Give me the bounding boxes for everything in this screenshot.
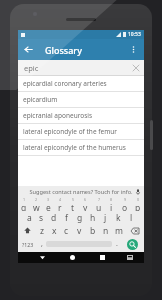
staticText: a xyxy=(27,212,32,224)
button[interactable]: Recent apps xyxy=(92,252,113,263)
button[interactable]: g xyxy=(73,211,86,224)
button[interactable]: epicranial aponeurosis xyxy=(18,108,144,123)
button[interactable]: . xyxy=(112,237,121,251)
staticText: n xyxy=(103,225,109,237)
staticText: c xyxy=(64,225,69,237)
button[interactable]: x xyxy=(48,224,60,237)
staticText: j xyxy=(104,212,107,224)
staticText: b xyxy=(90,225,96,237)
button[interactable]: l xyxy=(125,211,138,224)
staticText: 3 xyxy=(47,197,50,202)
button[interactable]: , xyxy=(37,237,46,251)
button[interactable]: 7 xyxy=(92,197,105,211)
staticText: 4 xyxy=(59,197,62,202)
button[interactable]: Home xyxy=(62,252,83,263)
staticText: Suggest contact names? Touch for info. xyxy=(29,188,133,196)
staticText: f xyxy=(65,212,68,224)
button[interactable]: Search xyxy=(127,239,138,250)
button[interactable]: h xyxy=(86,211,99,224)
button[interactable]: Shift xyxy=(18,224,36,237)
staticText: 6 xyxy=(84,197,87,202)
button[interactable]: 9 xyxy=(118,197,131,211)
staticText: s xyxy=(39,212,44,224)
button[interactable]: More options xyxy=(123,39,144,60)
staticText: epic xyxy=(24,63,39,73)
button[interactable]: Backspace xyxy=(125,224,144,237)
staticText: h xyxy=(90,212,96,224)
staticText: . xyxy=(116,239,118,249)
button[interactable]: epicardial coronary arteries xyxy=(18,76,144,91)
staticText: 5 xyxy=(72,197,75,202)
staticText: m xyxy=(115,225,123,237)
staticText: epicardial coronary arteries xyxy=(23,79,107,88)
button[interactable]: 6 xyxy=(79,197,92,211)
button[interactable]: f xyxy=(60,211,73,224)
staticText: r xyxy=(58,202,62,211)
button[interactable]: z xyxy=(36,224,48,237)
staticText: x xyxy=(52,225,57,237)
staticText: p xyxy=(135,202,141,211)
button[interactable]: epic xyxy=(18,60,144,76)
button[interactable]: Switch keyboard xyxy=(119,252,140,263)
staticText: epicranial aponeurosis xyxy=(23,111,93,120)
button[interactable]: lateral epicondyle of the humerus xyxy=(18,140,144,155)
button[interactable]: a xyxy=(23,211,35,224)
staticText: u xyxy=(96,202,102,211)
staticText: z xyxy=(40,225,44,237)
button[interactable]: 3 xyxy=(42,197,54,211)
staticText: k xyxy=(116,212,121,224)
staticText: d xyxy=(51,212,57,224)
button[interactable]: 0 xyxy=(131,197,144,211)
button[interactable]: epicardium xyxy=(18,92,144,107)
button[interactable]: lateral epicondyle of the femur xyxy=(18,124,144,139)
button[interactable]: c xyxy=(60,224,73,237)
button[interactable]: 2 xyxy=(30,197,42,211)
button[interactable]: 5 xyxy=(66,197,79,211)
button[interactable]: 4 xyxy=(54,197,66,211)
staticText: q xyxy=(21,202,27,211)
staticText: lateral epicondyle of the femur xyxy=(23,127,117,136)
button[interactable]: d xyxy=(47,211,60,224)
button[interactable]: j xyxy=(99,211,112,224)
staticText: y xyxy=(83,202,88,211)
button[interactable]: 8 xyxy=(105,197,118,211)
staticText: o xyxy=(122,202,128,211)
button[interactable]: n xyxy=(99,224,112,237)
button[interactable]: s xyxy=(35,211,47,224)
staticText: v xyxy=(77,225,82,237)
button[interactable]: k xyxy=(112,211,125,224)
staticText: i xyxy=(110,202,113,211)
button[interactable]: 1 xyxy=(18,197,30,211)
staticText: 9 xyxy=(124,197,127,202)
staticText: Glossary xyxy=(45,44,82,56)
staticText: 8 xyxy=(110,197,113,202)
button[interactable]: Suggest contact names? Touch for info. xyxy=(18,186,144,197)
button[interactable]: Back xyxy=(18,39,39,60)
staticText: lateral epicondyle of the humerus xyxy=(23,143,126,152)
staticText: 1 xyxy=(23,197,26,202)
button[interactable]: ?123 xyxy=(18,237,37,251)
button[interactable]: Clear search xyxy=(128,60,144,76)
staticText: epicardium xyxy=(23,95,58,104)
button[interactable]: v xyxy=(73,224,86,237)
staticText: 0 xyxy=(137,197,140,202)
button[interactable]: b xyxy=(86,224,99,237)
staticText: 2 xyxy=(35,197,38,202)
staticText: , xyxy=(41,239,43,249)
staticText: w xyxy=(33,202,40,211)
button[interactable]: Voice input xyxy=(133,187,142,196)
staticText: g xyxy=(77,212,83,224)
button[interactable]: Back xyxy=(32,252,53,263)
staticText: t xyxy=(71,202,75,211)
staticText: 10:53 xyxy=(128,31,141,38)
staticText: 7 xyxy=(98,197,101,202)
staticText: e xyxy=(46,202,51,211)
staticText: l xyxy=(130,212,133,224)
button[interactable]: m xyxy=(112,224,125,237)
staticText: ?123 xyxy=(22,241,34,248)
